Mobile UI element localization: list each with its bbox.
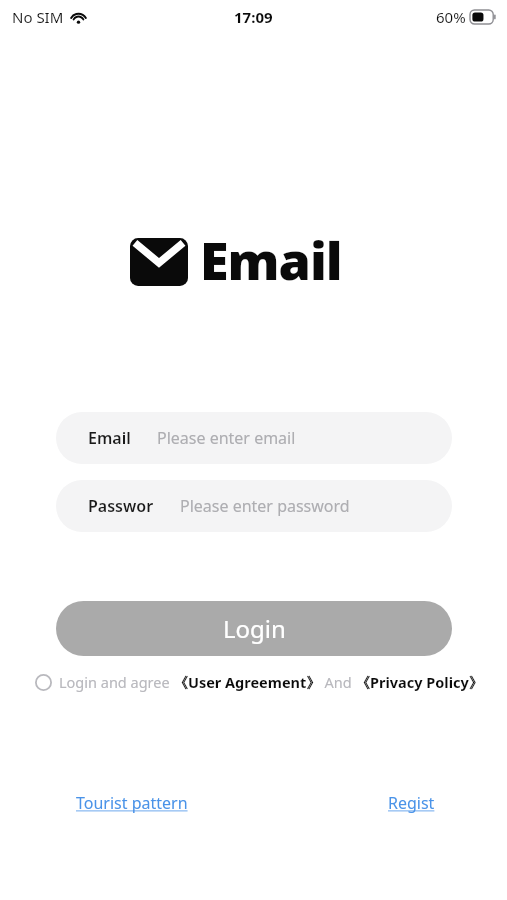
staticText: Please enter password <box>180 495 350 517</box>
staticText: Email <box>88 427 131 449</box>
staticText: Tourist pattern <box>76 792 188 814</box>
button[interactable]: Login and agree 《User Agreement》 And 《Pr… <box>59 672 484 692</box>
staticText: Passwor <box>88 495 154 517</box>
staticText: Login <box>223 612 286 645</box>
button[interactable]: Tourist pattern <box>76 792 188 814</box>
button[interactable]: Passwor <box>56 480 452 532</box>
staticText: No SIM <box>12 7 64 27</box>
staticText: 17:09 <box>234 7 273 27</box>
button[interactable]: Login <box>56 601 452 656</box>
staticText: Login and agree 《User Agreement》 And 《Pr… <box>59 672 484 692</box>
button[interactable]: Agree to terms <box>32 671 54 693</box>
staticText: 60% <box>436 7 466 27</box>
staticText: Please enter email <box>157 427 296 449</box>
staticText: Email <box>200 224 342 295</box>
button[interactable]: Email <box>56 412 452 464</box>
staticText: Regist <box>388 792 435 814</box>
button[interactable]: Regist <box>388 792 435 814</box>
